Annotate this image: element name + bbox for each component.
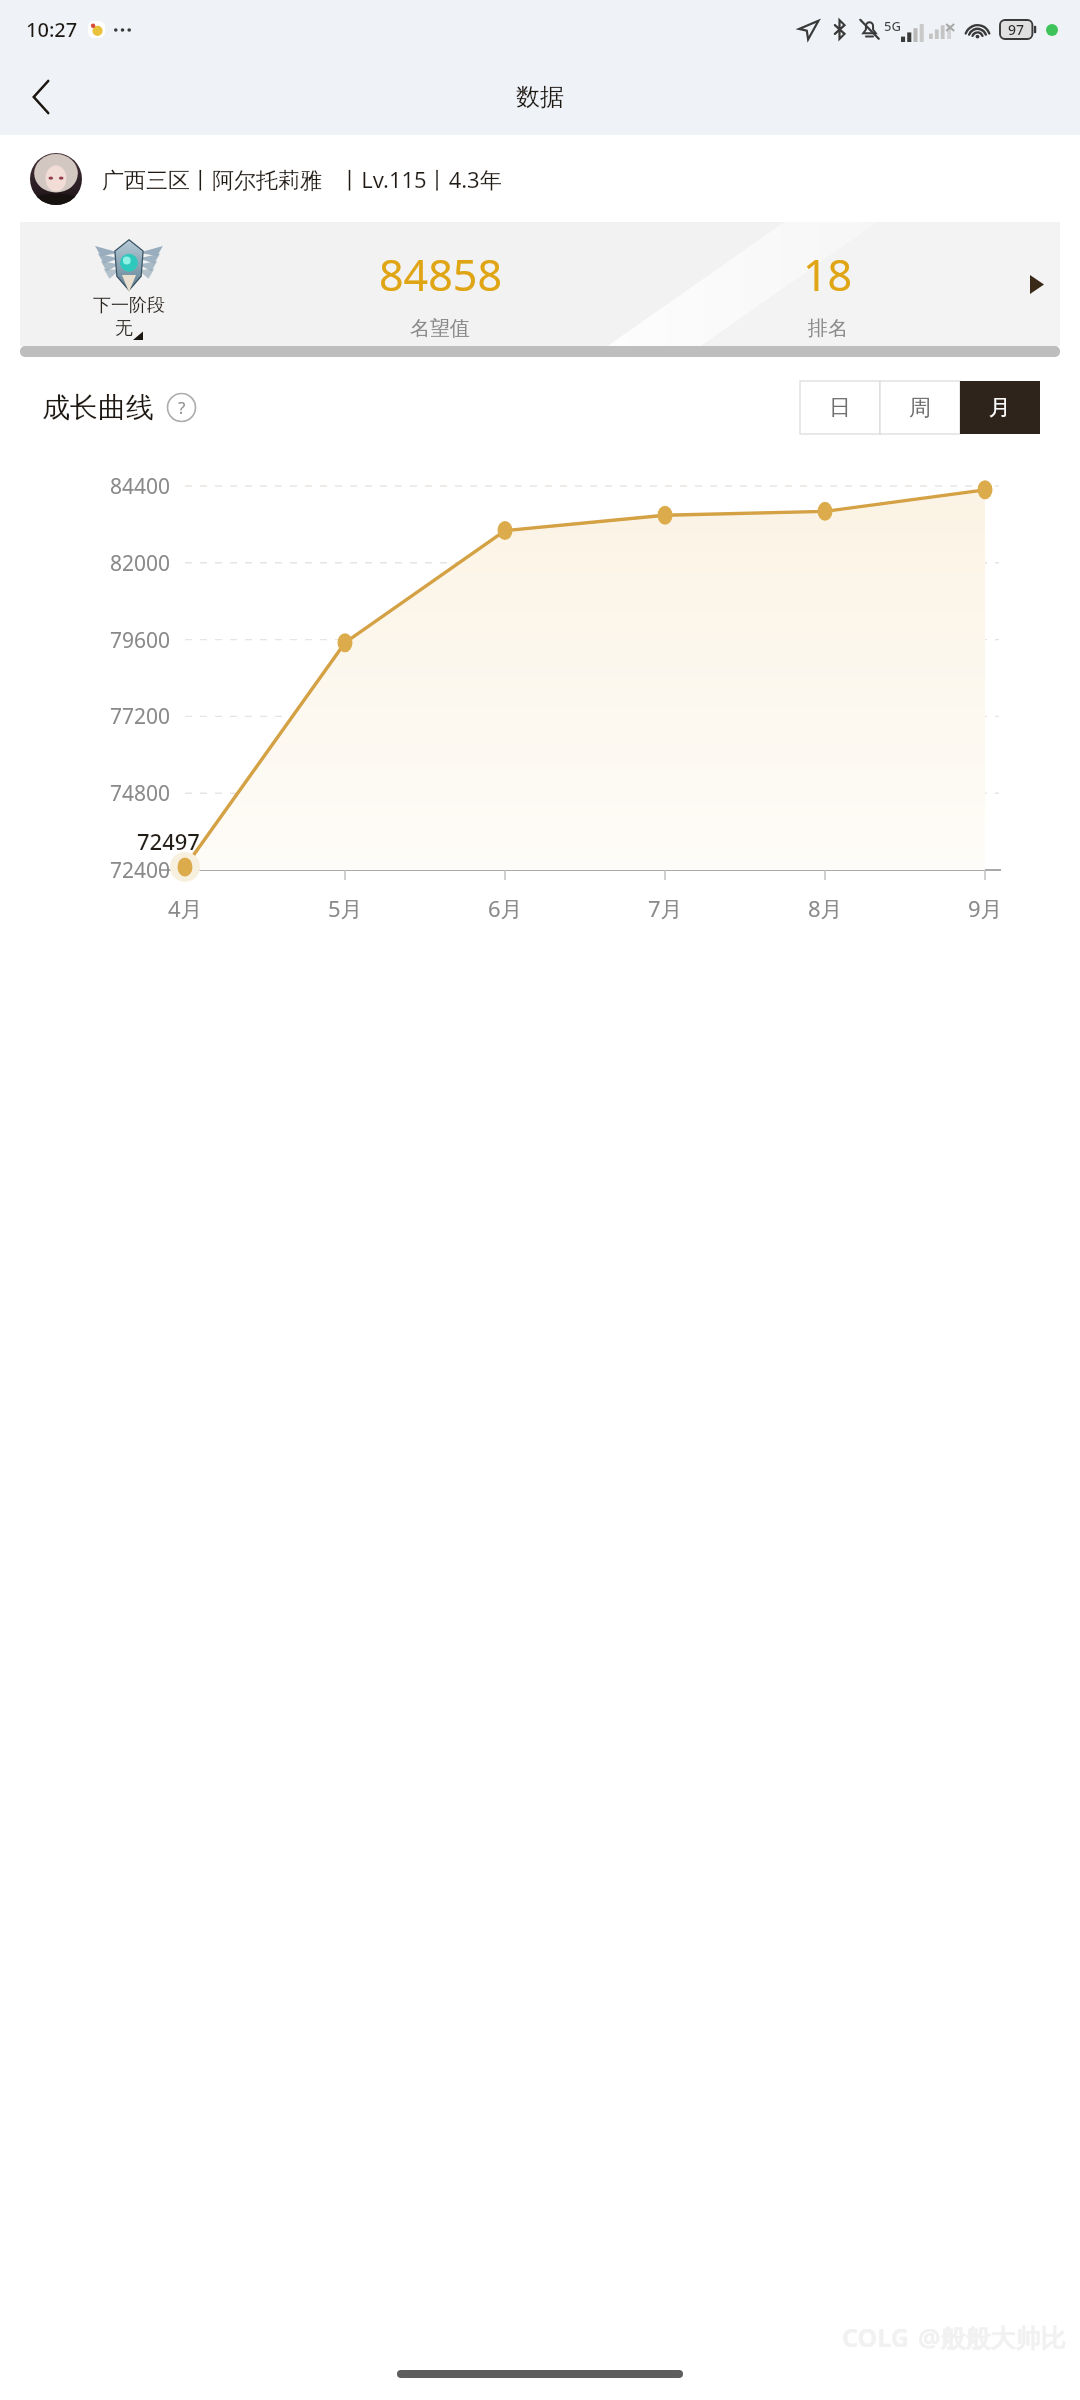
staticText: ? (178, 396, 186, 419)
staticText: 7月 (648, 893, 683, 923)
staticText: 排名 (808, 316, 848, 341)
staticText: 74800 (110, 779, 171, 808)
staticText: COLG (842, 2320, 909, 2354)
staticText: 82000 (110, 549, 171, 578)
staticText: 周 (909, 394, 931, 422)
staticText: 月 (989, 394, 1011, 422)
button[interactable]: Help (166, 392, 197, 423)
staticText: 成长曲线 (42, 390, 154, 425)
staticText: 84858 (379, 245, 502, 304)
staticText: 名望值 (410, 316, 470, 341)
staticText: 5G (884, 17, 901, 35)
staticText: 10:27 (26, 16, 78, 43)
staticText: 广西三区丨阿尔托莉雅 丨Lv.115丨4.3年 (102, 164, 502, 194)
button[interactable]: 月 (960, 381, 1040, 434)
button[interactable]: 广西三区丨阿尔托莉雅 丨Lv.115丨4.3年 (0, 149, 1080, 209)
staticText: 18 (803, 245, 853, 304)
button[interactable]: Back (12, 68, 70, 126)
staticText: 79600 (110, 626, 171, 655)
staticText: 84400 (110, 472, 171, 501)
button[interactable]: 日 (800, 381, 880, 434)
staticText: 5月 (328, 893, 363, 923)
staticText: 97 (1008, 20, 1025, 39)
staticText: 4月 (168, 893, 203, 923)
staticText: @般般大帅比 (918, 2320, 1066, 2354)
staticText: 日 (829, 394, 851, 422)
staticText: 6月 (488, 893, 523, 923)
staticText: 下一阶段 (93, 294, 165, 317)
staticText: 77200 (110, 702, 171, 731)
staticText: 9月 (968, 893, 1003, 923)
staticText: 8月 (808, 893, 843, 923)
staticText: 72497 (137, 826, 200, 856)
staticText: 无 (115, 317, 133, 340)
button[interactable]: 周 (880, 381, 960, 434)
staticText: 72400 (110, 856, 171, 885)
staticText: 数据 (516, 82, 564, 112)
button[interactable]: 下一阶段 (20, 222, 1060, 346)
